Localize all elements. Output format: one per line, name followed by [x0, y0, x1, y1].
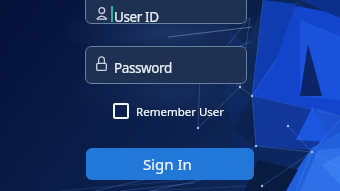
button[interactable]: Sign In [86, 148, 254, 180]
staticText: Password [114, 59, 172, 77]
button[interactable] [85, 46, 247, 84]
staticText: Sign In [143, 154, 192, 174]
staticText: User ID [114, 8, 159, 26]
button[interactable] [85, 0, 247, 24]
button[interactable] [108, 98, 228, 124]
staticText: Remember User [136, 104, 225, 120]
